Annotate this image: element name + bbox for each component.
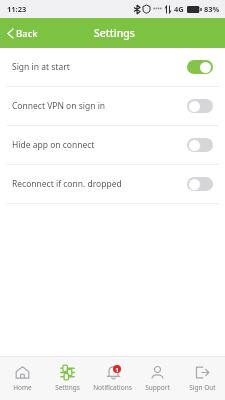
button[interactable]: Support [135,357,180,400]
button[interactable]: Connect VPN on sign in [0,87,225,125]
staticText: Home [13,383,32,392]
button[interactable]: Sign in at start [0,48,225,86]
staticText: 4G [174,4,184,14]
button[interactable]: Home [0,357,45,400]
staticText: Sign in at start [12,61,187,73]
staticText: Sign Out [189,383,216,392]
staticText: Back [16,27,38,40]
staticText: Settings [55,383,80,392]
button[interactable]: Sign Out [180,357,225,400]
staticText: 1 [115,366,119,373]
staticText: Settings [94,26,135,40]
button[interactable]: 1 [90,357,135,400]
button[interactable]: Reconnect if conn. dropped [0,165,225,203]
button[interactable]: Toggle off [187,138,213,152]
button[interactable]: Back [0,22,48,45]
button[interactable]: Hide app on connect [0,126,225,164]
staticText: Connect VPN on sign in [12,100,187,112]
staticText: Notifications [93,383,132,392]
button[interactable]: Toggle off [187,177,213,191]
button[interactable]: Settings [45,357,90,400]
button[interactable]: Toggle on [187,60,213,74]
staticText: 11:23 [7,4,27,14]
staticText: Support [145,383,170,392]
staticText: Hide app on connect [12,139,187,151]
staticText: 83% [204,4,220,14]
staticText: Reconnect if conn. dropped [12,178,187,190]
button[interactable]: Toggle off [187,99,213,113]
